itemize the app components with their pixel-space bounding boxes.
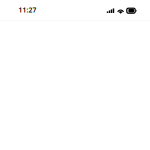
staticText: 11:27 [18,6,36,14]
